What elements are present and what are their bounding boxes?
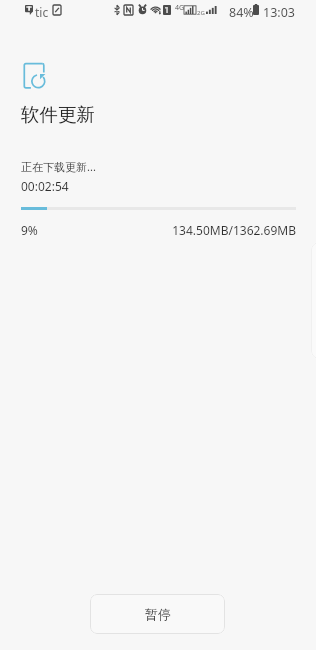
staticText: 暂停: [145, 606, 171, 622]
staticText: 软件更新: [21, 103, 95, 126]
staticText: 2G: [197, 9, 205, 17]
staticText: 4G: [175, 3, 185, 13]
staticText: tic: [35, 4, 49, 20]
staticText: 00:02:54: [21, 178, 69, 194]
staticText: 84%: [229, 4, 254, 21]
staticText: 9%: [21, 222, 38, 238]
staticText: 134.50MB/1362.69MB: [172, 222, 296, 238]
button[interactable]: 暂停: [90, 594, 225, 634]
staticText: 正在下载更新...: [21, 159, 96, 174]
staticText: 13:03: [263, 4, 295, 21]
other: Software update: [22, 61, 48, 89]
